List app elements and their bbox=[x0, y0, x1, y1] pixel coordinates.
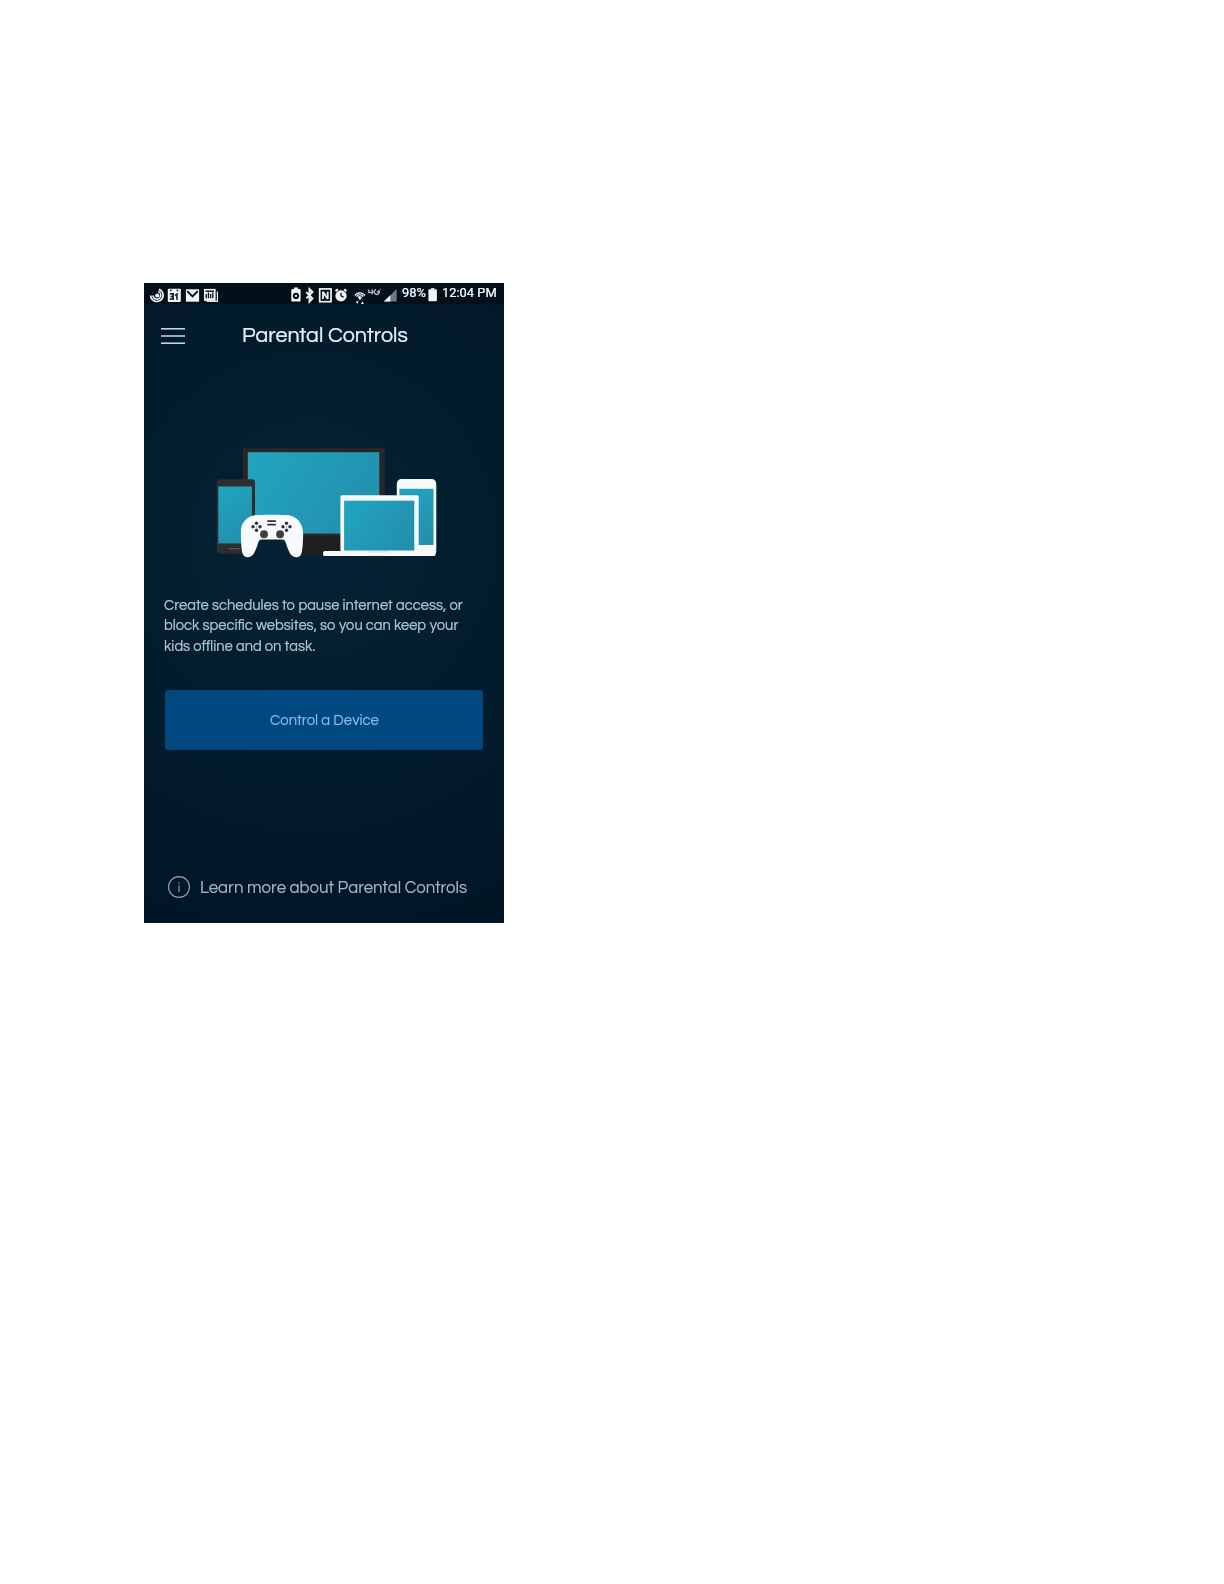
button[interactable]: Learn more about Parental Controls bbox=[144, 865, 504, 909]
button[interactable]: Open navigation menu bbox=[151, 314, 195, 358]
staticText: Control a Device bbox=[270, 713, 379, 728]
staticText: Parental Controls bbox=[242, 324, 408, 346]
staticText: Learn more about Parental Controls bbox=[200, 879, 468, 896]
button[interactable]: Control a Device bbox=[165, 690, 483, 750]
staticText: 12:04 PM bbox=[442, 285, 497, 300]
staticText: 98% bbox=[402, 285, 426, 300]
staticText: Create schedules to pause internet acces… bbox=[164, 598, 463, 654]
